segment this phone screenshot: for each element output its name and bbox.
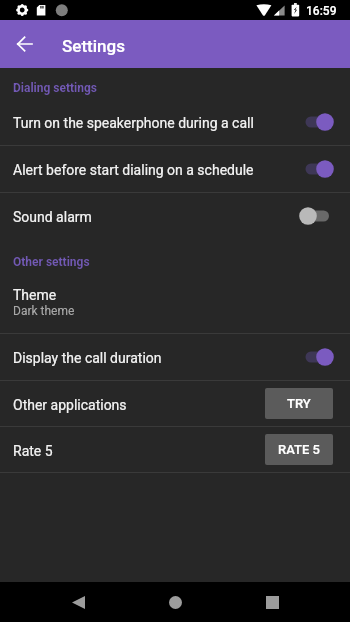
- button[interactable]: Back: [6, 26, 42, 62]
- staticText: Dark theme: [13, 304, 75, 318]
- button[interactable]: Home: [151, 582, 199, 622]
- button[interactable]: Alert before start dialing on a schedule: [0, 146, 350, 192]
- button[interactable]: RATE 5: [265, 434, 333, 465]
- button[interactable]: Back: [54, 582, 102, 622]
- staticText: Other applications: [13, 397, 265, 413]
- button[interactable]: Sound alarm: [0, 193, 350, 239]
- staticText: Theme: [13, 287, 57, 303]
- staticText: Turn on the speakerphone during a call: [13, 115, 304, 131]
- button[interactable]: Recent apps: [248, 582, 296, 622]
- staticText: Alert before start dialing on a schedule: [13, 162, 304, 178]
- staticText: Other settings: [13, 255, 90, 269]
- button[interactable]: Display the call duration: [0, 334, 350, 380]
- staticText: 16:59: [306, 4, 337, 18]
- button[interactable]: Theme: [0, 275, 350, 333]
- staticText: Dialing settings: [13, 81, 97, 95]
- button[interactable]: TRY: [265, 388, 333, 419]
- staticText: Rate 5: [13, 443, 265, 459]
- button[interactable]: Turn on the speakerphone during a call: [0, 98, 350, 145]
- staticText: Display the call duration: [13, 350, 304, 366]
- staticText: Settings: [62, 36, 125, 56]
- staticText: RATE 5: [278, 442, 320, 457]
- staticText: Sound alarm: [13, 209, 304, 225]
- staticText: TRY: [287, 396, 311, 411]
